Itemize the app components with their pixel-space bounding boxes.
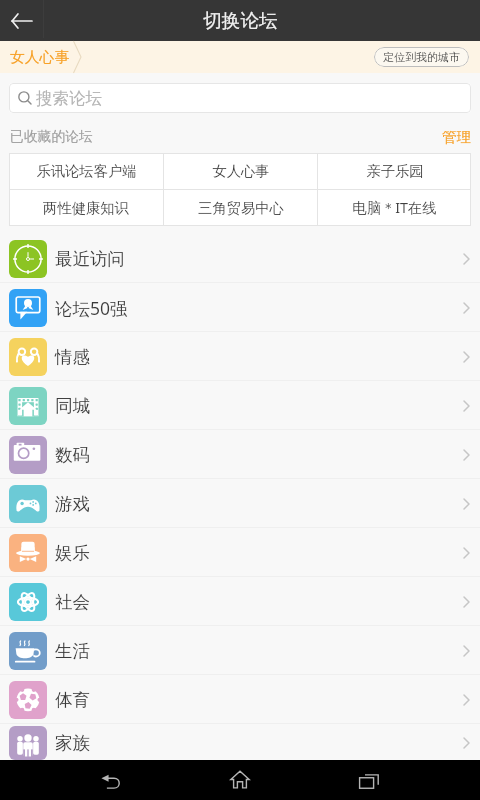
staticText: 情感	[55, 346, 90, 368]
button[interactable]: 定位到我的城市	[374, 47, 469, 67]
staticText: 管理	[442, 128, 471, 146]
button[interactable]: 同城	[0, 381, 480, 429]
button[interactable]: 三角贸易中心	[164, 190, 317, 226]
button[interactable]: 乐讯论坛客户端	[9, 153, 163, 189]
staticText: 家族	[55, 732, 90, 754]
staticText: 数码	[55, 444, 90, 466]
staticText: 亲子乐园	[366, 162, 424, 180]
button[interactable]: Home	[211, 760, 269, 800]
staticText: 社会	[55, 591, 90, 613]
staticText: 娱乐	[55, 542, 90, 564]
button[interactable]: 生活	[0, 626, 480, 674]
staticText: 三角贸易中心	[198, 199, 284, 217]
staticText: 搜索论坛	[36, 88, 102, 109]
staticText: 女人心事	[212, 162, 270, 180]
staticText: 两性健康知识	[43, 199, 129, 217]
staticText: 女人心事	[10, 48, 70, 67]
button[interactable]: 体育	[0, 675, 480, 723]
button[interactable]: 数码	[0, 430, 480, 478]
button[interactable]: 社会	[0, 577, 480, 625]
staticText: 同城	[55, 395, 90, 417]
button[interactable]: Recent apps	[340, 760, 398, 800]
button[interactable]: 管理	[440, 126, 473, 148]
button[interactable]: 亲子乐园	[318, 153, 471, 189]
button[interactable]: Back	[82, 760, 140, 800]
staticText: 体育	[55, 689, 90, 711]
staticText: 切换论坛	[203, 9, 278, 33]
button[interactable]: 娱乐	[0, 528, 480, 576]
staticText: 已收藏的论坛	[10, 128, 93, 145]
staticText: 游戏	[55, 493, 90, 515]
staticText: 论坛50强	[55, 296, 128, 320]
button[interactable]: 电脑＊IT在线	[318, 190, 471, 226]
staticText: 生活	[55, 640, 90, 662]
button[interactable]: 论坛50强	[0, 283, 480, 331]
staticText: 电脑＊IT在线	[352, 198, 437, 218]
button[interactable]: 女人心事	[0, 41, 86, 73]
staticText: 定位到我的城市	[383, 50, 460, 64]
button[interactable]: 游戏	[0, 479, 480, 527]
staticText: 最近访问	[55, 248, 125, 270]
button[interactable]: 搜索论坛	[9, 83, 471, 113]
button[interactable]: 最近访问	[0, 234, 480, 282]
staticText: 乐讯论坛客户端	[36, 162, 137, 180]
button[interactable]: 女人心事	[164, 153, 317, 189]
button[interactable]: Back	[0, 0, 43, 41]
button[interactable]: 情感	[0, 332, 480, 380]
button[interactable]: 两性健康知识	[9, 190, 163, 226]
button[interactable]: 家族	[0, 724, 480, 760]
